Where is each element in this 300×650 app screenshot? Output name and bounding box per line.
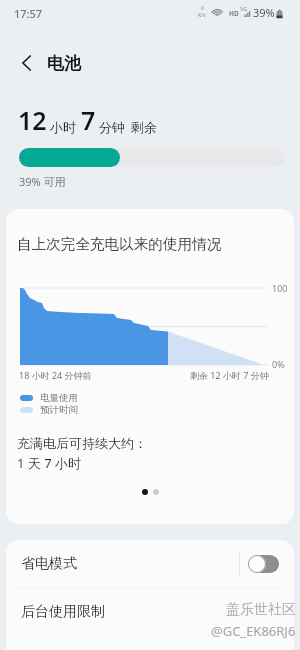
staticText: 7 [81, 103, 96, 137]
staticText: 小时 [50, 119, 76, 135]
staticText: @GC_EK86RJ6 [211, 622, 296, 640]
staticText: 100 [272, 282, 288, 294]
staticText: 5G [240, 5, 248, 12]
button[interactable]: 后台使用限制 [6, 588, 294, 635]
staticText: 39% [253, 5, 275, 20]
button[interactable]: 省电模式 toggle [248, 555, 279, 573]
staticText: K/s [198, 12, 206, 19]
staticText: 电量使用 [40, 392, 78, 404]
staticText: 17:57 [14, 6, 43, 21]
staticText: 预计时间 [40, 404, 78, 416]
staticText: 分钟 [99, 119, 125, 135]
button[interactable]: 省电模式 [6, 540, 294, 587]
button[interactable]: Back [0, 45, 44, 81]
staticText: HD [229, 9, 239, 18]
staticText: 12 [18, 103, 47, 137]
staticText: 18 小时 24 分钟前 [19, 369, 92, 381]
staticText: 39% 可用 [19, 174, 66, 189]
staticText: 省电模式 [21, 555, 77, 573]
staticText: 充满电后可持续大约： [17, 435, 147, 451]
staticText: 1 天 7 小时 [17, 454, 82, 472]
staticText: 后台使用限制 [21, 603, 105, 621]
staticText: 0 [201, 5, 204, 12]
staticText: 剩余 [131, 119, 157, 135]
staticText: 0% [272, 358, 285, 370]
staticText: 盖乐世社区 [226, 601, 296, 619]
staticText: 剩余 12 小时 7 分钟 [190, 369, 269, 381]
staticText: 自上次完全充电以来的使用情况 [17, 235, 222, 253]
staticText: 电池 [47, 53, 81, 74]
button[interactable]: 自上次完全充电以来的使用情况 [6, 209, 294, 524]
